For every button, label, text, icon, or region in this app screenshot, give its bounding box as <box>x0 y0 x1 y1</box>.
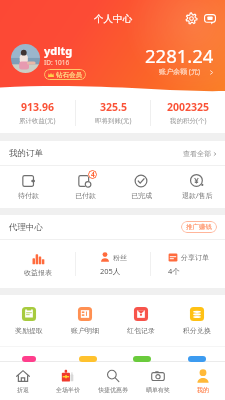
staticText: 205人 <box>100 266 121 276</box>
staticText: 快捷优惠券 <box>98 386 128 394</box>
staticText: 退款/售后 <box>182 191 213 201</box>
staticText: 待付款 <box>18 191 39 200</box>
button[interactable]: 账户明细 <box>57 295 113 346</box>
staticText: 已完成 <box>131 191 152 200</box>
staticText: 全场半价 <box>56 386 80 394</box>
staticText: 红包记录 <box>127 326 155 335</box>
button[interactable]: Messages <box>201 10 218 27</box>
button[interactable]: 325.5 <box>76 92 150 133</box>
staticText: 奖励提取 <box>15 326 43 335</box>
staticText: 2281.24 <box>145 43 214 68</box>
button[interactable]: 奖励提取 <box>0 295 57 346</box>
staticText: 累计收益(元) <box>19 116 56 125</box>
staticText: 分享订单 <box>181 253 209 262</box>
staticText: 4个 <box>168 266 180 276</box>
button[interactable]: 红包记录 <box>113 295 169 346</box>
staticText: 325.5 <box>100 100 127 114</box>
button[interactable]: 折返 <box>0 362 45 400</box>
button[interactable]: 推广赚钱 <box>186 221 212 233</box>
button[interactable]: 粉丝 <box>76 240 150 288</box>
staticText: 钻石会员 <box>56 71 82 79</box>
button[interactable]: 全场半价 <box>45 362 90 400</box>
button[interactable]: 退款/售后 <box>169 166 225 208</box>
staticText: 积分兑换 <box>183 326 211 335</box>
button[interactable]: 待付款 <box>0 166 57 208</box>
button[interactable]: 已完成 <box>113 166 169 208</box>
button[interactable]: 晒单有奖 <box>135 362 180 400</box>
staticText: 账户余额 (元) <box>159 67 201 77</box>
staticText: 账户明细 <box>71 326 99 335</box>
button[interactable]: 分享订单 <box>151 240 225 288</box>
staticText: 折返 <box>17 386 29 394</box>
button[interactable]: Settings <box>183 10 200 27</box>
button[interactable]: 积分兑换 <box>169 295 225 346</box>
button[interactable]: Avatar <box>11 44 40 73</box>
button[interactable]: 快捷优惠券 <box>90 362 135 400</box>
button[interactable]: 913.96 <box>0 92 75 133</box>
staticText: 查看全部 <box>183 149 211 158</box>
staticText: 粉丝 <box>113 253 127 262</box>
staticText: 收益报表 <box>24 268 52 277</box>
button[interactable]: 4 <box>57 166 113 208</box>
button[interactable]: 我的 <box>180 362 225 400</box>
button[interactable]: 2002325 <box>151 92 225 133</box>
button[interactable]: 账户余额 (元) <box>159 67 214 77</box>
staticText: 晒单有奖 <box>146 386 170 394</box>
staticText: 已付款 <box>75 191 96 200</box>
staticText: 代理中心 <box>9 222 43 233</box>
staticText: 我的订单 <box>9 148 43 159</box>
button[interactable]: 查看全部 <box>183 149 217 158</box>
staticText: 我的积分(个) <box>170 116 207 125</box>
staticText: 2002325 <box>167 100 210 114</box>
staticText: 我的 <box>197 386 209 394</box>
staticText: ID: 1016 <box>44 58 70 67</box>
staticText: 即将到账(元) <box>95 116 132 125</box>
staticText: ydltg <box>44 43 73 58</box>
staticText: 913.96 <box>21 100 54 114</box>
staticText: 推广赚钱 <box>186 223 212 231</box>
button[interactable]: 钻石会员 <box>48 69 82 80</box>
staticText: 个人中心 <box>94 13 132 25</box>
staticText: 4 <box>91 170 95 179</box>
